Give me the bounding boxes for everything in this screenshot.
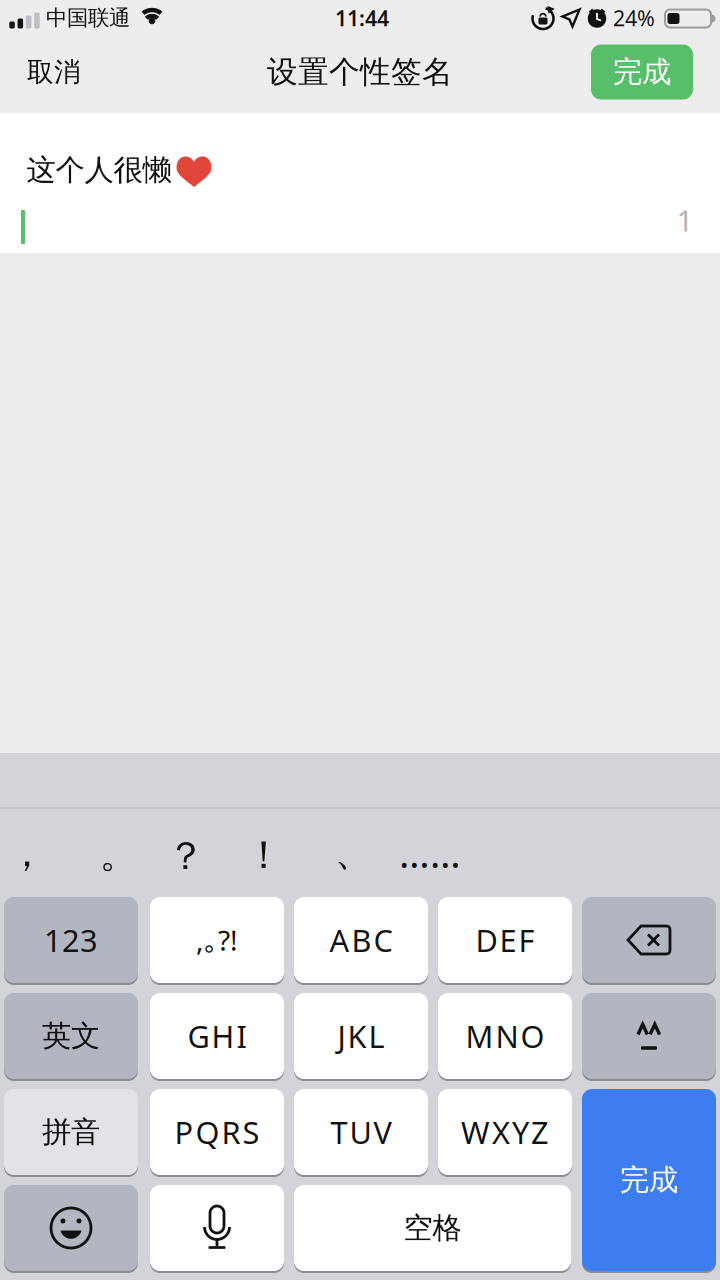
- staticText: 空格: [403, 1210, 461, 1246]
- button[interactable]: ,｡?!: [150, 897, 284, 983]
- staticText: PQRS: [174, 1112, 259, 1152]
- staticText: MNO: [465, 1016, 544, 1056]
- button[interactable]: 拼音: [4, 1089, 138, 1175]
- staticText: 取消: [27, 56, 81, 88]
- button[interactable]: 取消: [0, 42, 109, 102]
- button[interactable]: 空格: [294, 1185, 571, 1271]
- button[interactable]: JKL: [294, 993, 428, 1079]
- staticText: WXYZ: [461, 1112, 549, 1152]
- staticText: 11:44: [335, 4, 389, 32]
- staticText: 24%: [613, 4, 655, 32]
- button[interactable]: 、: [314, 815, 394, 889]
- button[interactable]: MNO: [438, 993, 572, 1079]
- button[interactable]: 删除: [582, 897, 716, 983]
- button[interactable]: ？: [146, 819, 226, 893]
- staticText: 英文: [42, 1018, 100, 1054]
- button[interactable]: ……: [390, 816, 470, 890]
- button[interactable]: ！: [224, 818, 304, 892]
- button[interactable]: 听写: [150, 1185, 284, 1271]
- button[interactable]: DEF: [438, 897, 572, 983]
- button[interactable]: WXYZ: [438, 1089, 572, 1175]
- staticText: 中国联通: [46, 5, 130, 31]
- button[interactable]: ABC: [294, 897, 428, 983]
- staticText: ……: [399, 827, 461, 879]
- button[interactable]: GHI: [150, 993, 284, 1079]
- staticText: DEF: [475, 920, 534, 960]
- staticText: 、: [334, 828, 373, 876]
- staticText: 。: [99, 830, 138, 878]
- staticText: TUV: [330, 1112, 391, 1152]
- staticText: 1: [676, 200, 693, 239]
- button[interactable]: TUV: [294, 1089, 428, 1175]
- staticText: 拼音: [42, 1114, 100, 1150]
- button[interactable]: PQRS: [150, 1089, 284, 1175]
- button[interactable]: 分词: [582, 993, 716, 1079]
- staticText: ，: [7, 829, 46, 877]
- staticText: 完成: [613, 54, 671, 90]
- button[interactable]: 表情: [4, 1185, 138, 1271]
- button[interactable]: 123: [4, 897, 138, 983]
- staticText: ,｡?!: [196, 921, 238, 959]
- staticText: JKL: [337, 1016, 384, 1056]
- button[interactable]: 完成: [582, 1089, 716, 1271]
- button[interactable]: ，: [0, 816, 67, 890]
- staticText: 123: [44, 920, 98, 960]
- staticText: 设置个性签名: [267, 53, 453, 91]
- staticText: ！: [244, 831, 283, 879]
- staticText: ？: [166, 832, 205, 880]
- staticText: 完成: [620, 1162, 678, 1198]
- staticText: ABC: [329, 920, 392, 960]
- staticText: 这个人很懒: [26, 152, 171, 188]
- staticText: GHI: [187, 1016, 246, 1056]
- button[interactable]: 英文: [4, 993, 138, 1079]
- button[interactable]: 。: [79, 817, 159, 891]
- button[interactable]: 完成: [591, 44, 693, 99]
